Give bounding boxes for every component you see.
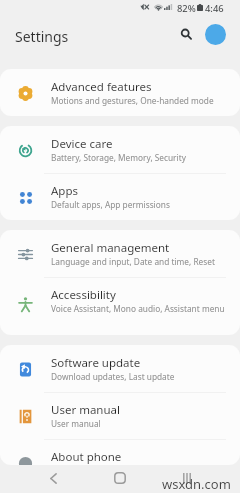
staticText: Language and input, Date and time, Reset	[51, 256, 215, 267]
staticText: Motions and gestures, One-handed mode	[51, 95, 214, 106]
staticText: wsxdn.com	[162, 475, 231, 493]
button[interactable]: Advanced features	[0, 69, 240, 116]
staticText: Settings	[15, 27, 69, 46]
staticText: Apps	[51, 183, 79, 199]
staticText: User manual	[51, 402, 120, 418]
button[interactable]: Back	[40, 465, 66, 491]
staticText: Accessibility	[51, 287, 116, 303]
staticText: User manual	[51, 418, 101, 429]
staticText: Battery, Storage, Memory, Security	[51, 152, 186, 163]
button[interactable]: Account	[205, 24, 226, 45]
button[interactable]: Search	[173, 21, 199, 47]
staticText: Device care	[51, 136, 113, 152]
button[interactable]: Apps	[0, 173, 240, 220]
button[interactable]: Device care	[0, 126, 240, 173]
staticText: Software update	[51, 355, 141, 371]
staticText: Voice Assistant, Mono audio, Assistant m…	[51, 303, 225, 314]
button[interactable]: Home	[107, 465, 133, 491]
button[interactable]: About phone	[0, 439, 240, 465]
button[interactable]: User manual	[0, 392, 240, 439]
staticText: General management	[51, 240, 170, 256]
staticText: Download updates, Last update	[51, 371, 175, 382]
button[interactable]: Accessibility	[0, 277, 240, 335]
button[interactable]: Software update	[0, 345, 240, 392]
staticText: About phone	[51, 449, 122, 465]
button[interactable]: General management	[0, 230, 240, 277]
staticText: Advanced features	[51, 79, 152, 95]
button[interactable]: Recent apps	[174, 465, 200, 491]
staticText: Default apps, App permissions	[51, 199, 170, 210]
staticText: 4:46	[205, 2, 224, 15]
staticText: 82%	[177, 2, 196, 15]
